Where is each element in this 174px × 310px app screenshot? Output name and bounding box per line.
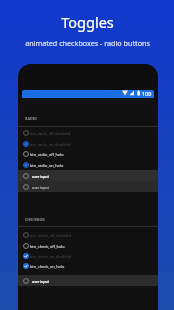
button[interactable]: user input	[18, 275, 158, 286]
button[interactable]: user input	[18, 181, 158, 192]
staticText: btn_check_off_disabled	[30, 233, 72, 238]
staticText: btn_check_on_disabled	[30, 254, 71, 259]
staticText: 100	[142, 90, 152, 97]
staticText: RADIO	[25, 116, 38, 121]
staticText: user input	[32, 174, 49, 178]
button[interactable]: btn_check_off_disabled	[18, 230, 158, 240]
button[interactable]: btn_check_on_disabled	[18, 251, 158, 261]
staticText: CHECKBOX	[25, 217, 45, 222]
staticText: btn_radio_off_disabled	[30, 131, 71, 136]
staticText: btn_check_off_holo	[30, 244, 65, 249]
button[interactable]: btn_check_on_holo	[18, 261, 158, 271]
button[interactable]: user input	[18, 170, 158, 181]
button[interactable]: btn_radio_on_holo	[18, 160, 158, 170]
button[interactable]: btn_radio_off_holo	[18, 149, 158, 159]
button[interactable]: btn_check_off_holo	[18, 241, 158, 251]
staticText: btn_radio_on_holo	[30, 163, 64, 168]
staticText: btn_radio_off_holo	[30, 152, 64, 157]
staticText: btn_check_on_holo	[30, 264, 65, 269]
button[interactable]: btn_radio_on_disabled	[18, 139, 158, 149]
staticText: Toggles	[61, 12, 114, 32]
staticText: btn_radio_on_disabled	[30, 142, 71, 147]
staticText: user input	[32, 185, 49, 189]
staticText: user input	[32, 279, 49, 283]
staticText: animated checkboxes - radio buttons	[25, 38, 150, 48]
button[interactable]: btn_radio_off_disabled	[18, 128, 158, 138]
